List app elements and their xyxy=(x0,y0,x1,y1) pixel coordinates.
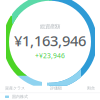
button[interactable]: 国内株式 xyxy=(0,93,100,100)
staticText: 国内株式 xyxy=(12,94,28,99)
staticText: 割合 xyxy=(87,86,95,91)
staticText: +¥23,946 xyxy=(35,51,65,60)
staticText: 総資産額 xyxy=(40,23,60,30)
staticText: 評価額 xyxy=(50,86,62,91)
staticText: 資産クラス xyxy=(5,86,25,91)
staticText: ¥1,163,946 xyxy=(14,31,86,50)
